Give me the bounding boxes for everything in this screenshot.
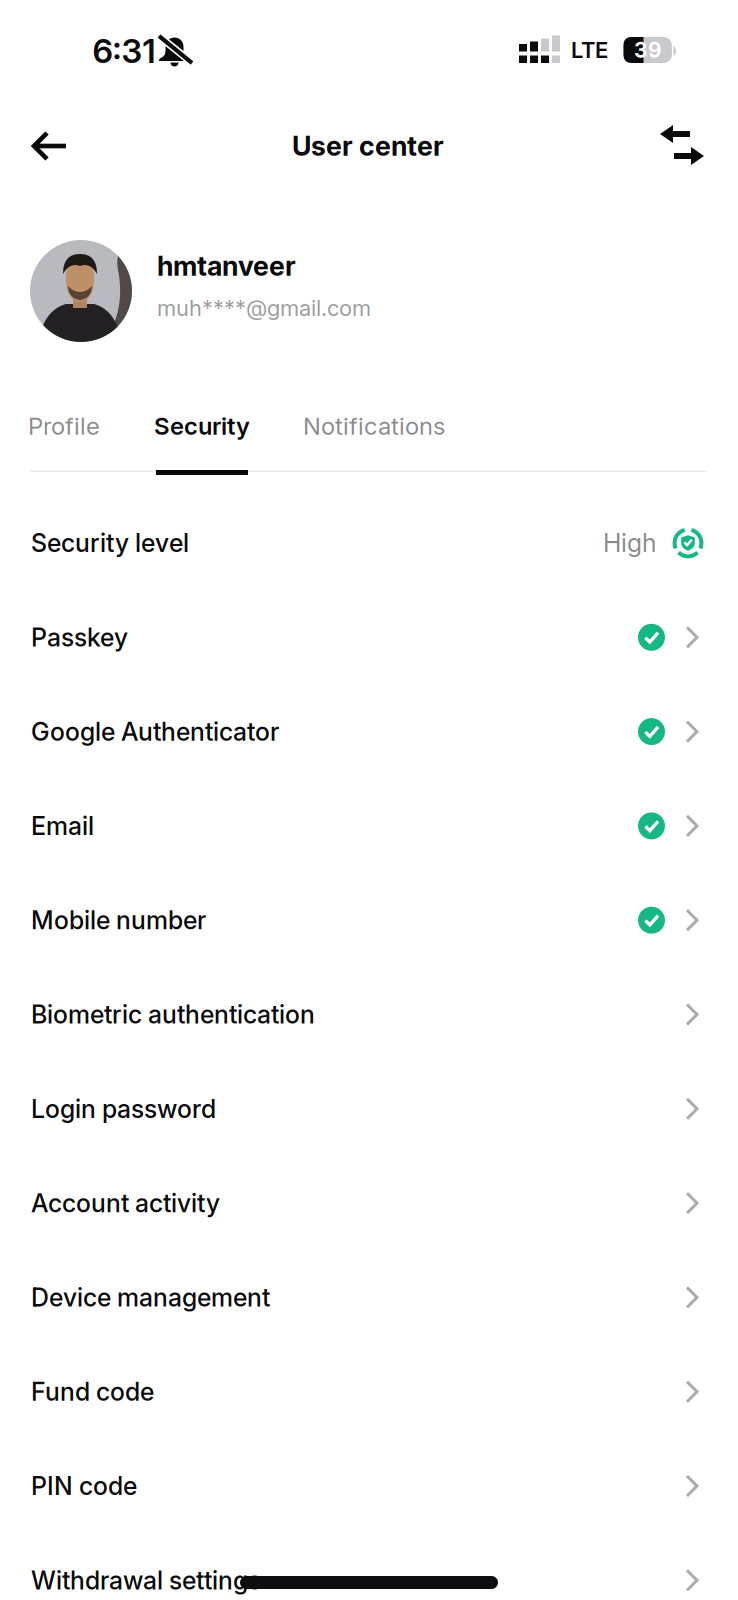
button[interactable]: Login password: [0, 1062, 738, 1156]
staticText: Google Authenticator: [31, 716, 279, 747]
button[interactable]: Back: [17, 120, 81, 172]
staticText: Notifications: [303, 411, 445, 440]
staticText: PIN code: [31, 1471, 137, 1501]
button[interactable]: Google Authenticator: [0, 685, 738, 779]
staticText: muh****@gmail.com: [157, 295, 371, 321]
button[interactable]: Biometric authentication: [0, 967, 738, 1061]
staticText: Biometric authentication: [31, 999, 315, 1030]
button[interactable]: Device management: [0, 1250, 738, 1344]
staticText: Security level: [31, 528, 189, 558]
button[interactable]: Security: [154, 396, 250, 456]
staticText: Profile: [28, 411, 100, 440]
staticText: High: [603, 528, 656, 558]
button[interactable]: Passkey: [0, 590, 738, 684]
staticText: Passkey: [31, 622, 128, 652]
staticText: hmtanveer: [157, 250, 296, 282]
staticText: Withdrawal settings: [31, 1565, 261, 1595]
staticText: Email: [31, 811, 94, 841]
staticText: LTE: [571, 37, 608, 63]
button[interactable]: Withdrawal settings: [0, 1533, 738, 1600]
staticText: Login password: [31, 1094, 216, 1124]
staticText: 6:31: [92, 31, 155, 71]
staticText: Account activity: [31, 1188, 220, 1218]
button[interactable]: Switch account: [658, 119, 706, 171]
staticText: Device management: [31, 1282, 270, 1312]
button[interactable]: Email: [0, 779, 738, 873]
button[interactable]: Account activity: [0, 1156, 738, 1250]
button[interactable]: PIN code: [0, 1439, 738, 1533]
staticText: Mobile number: [31, 905, 206, 935]
staticText: Security: [154, 411, 250, 440]
button[interactable]: Fund code: [0, 1345, 738, 1439]
button[interactable]: Security level: [0, 496, 738, 590]
button[interactable]: Notifications: [303, 396, 445, 456]
staticText: Fund code: [31, 1377, 154, 1407]
button[interactable]: Profile: [28, 396, 100, 456]
staticText: 39: [634, 37, 662, 63]
button[interactable]: Mobile number: [0, 873, 738, 967]
staticText: User center: [292, 130, 444, 162]
